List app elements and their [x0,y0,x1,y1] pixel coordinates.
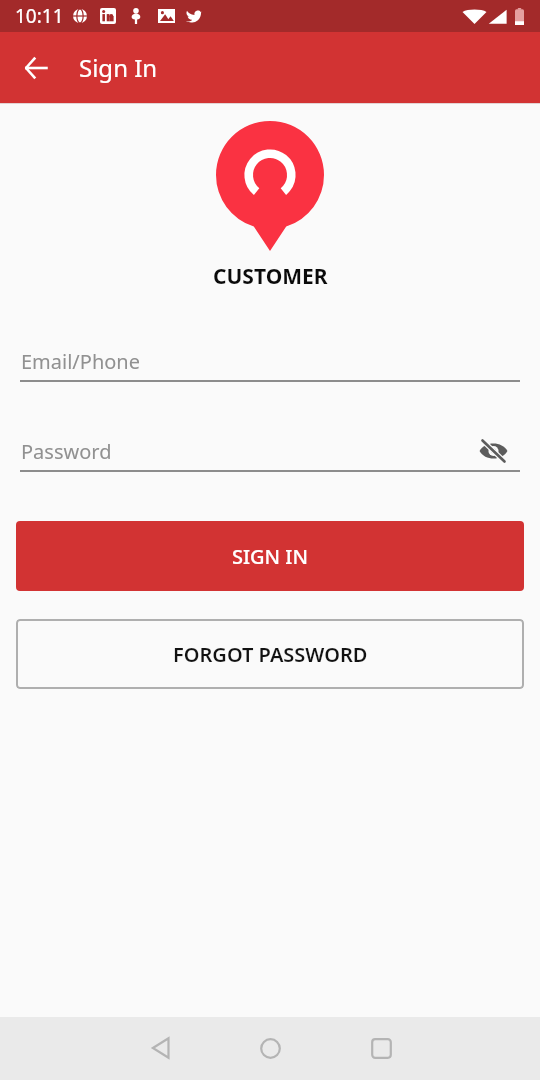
button[interactable]: Toggle password visibility [474,432,512,470]
staticText: 10:11 [15,3,64,29]
button[interactable]: Home [246,1024,294,1072]
staticText: SIGN IN [232,543,308,570]
staticText: Password [21,438,112,465]
button[interactable]: Recents [357,1024,405,1072]
button[interactable]: Back [136,1024,184,1072]
staticText: FORGOT PASSWORD [173,641,368,668]
staticText: Sign In [79,51,158,84]
button[interactable]: FORGOT PASSWORD [16,619,524,689]
staticText: CUSTOMER [213,262,328,291]
staticText: Email/Phone [21,348,140,375]
button[interactable]: Back [12,44,60,92]
button[interactable]: SIGN IN [16,521,524,591]
